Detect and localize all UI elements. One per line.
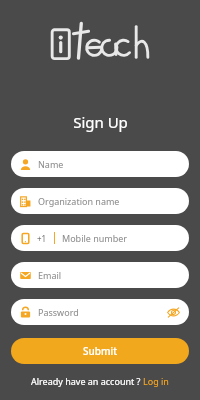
button[interactable]: Name	[11, 151, 189, 177]
button[interactable]: Password	[11, 299, 189, 325]
staticText: Mobile number	[62, 232, 128, 244]
button[interactable]: Log in	[143, 375, 169, 387]
staticText: Log in	[143, 375, 169, 387]
staticText: Submit	[83, 344, 117, 358]
button[interactable]: Submit	[11, 338, 189, 364]
staticText: +1	[37, 233, 47, 244]
staticText: Name	[38, 158, 64, 170]
button[interactable]: Show password	[165, 304, 181, 320]
button[interactable]: +1	[11, 225, 189, 251]
staticText: Password	[38, 306, 79, 318]
button[interactable]: Organization name	[11, 188, 189, 214]
staticText: Email	[38, 269, 62, 281]
staticText: Organization name	[38, 195, 120, 207]
staticText: Sign Up	[73, 112, 128, 132]
staticText: Already have an account ?	[31, 375, 143, 387]
button[interactable]: Email	[11, 262, 189, 288]
